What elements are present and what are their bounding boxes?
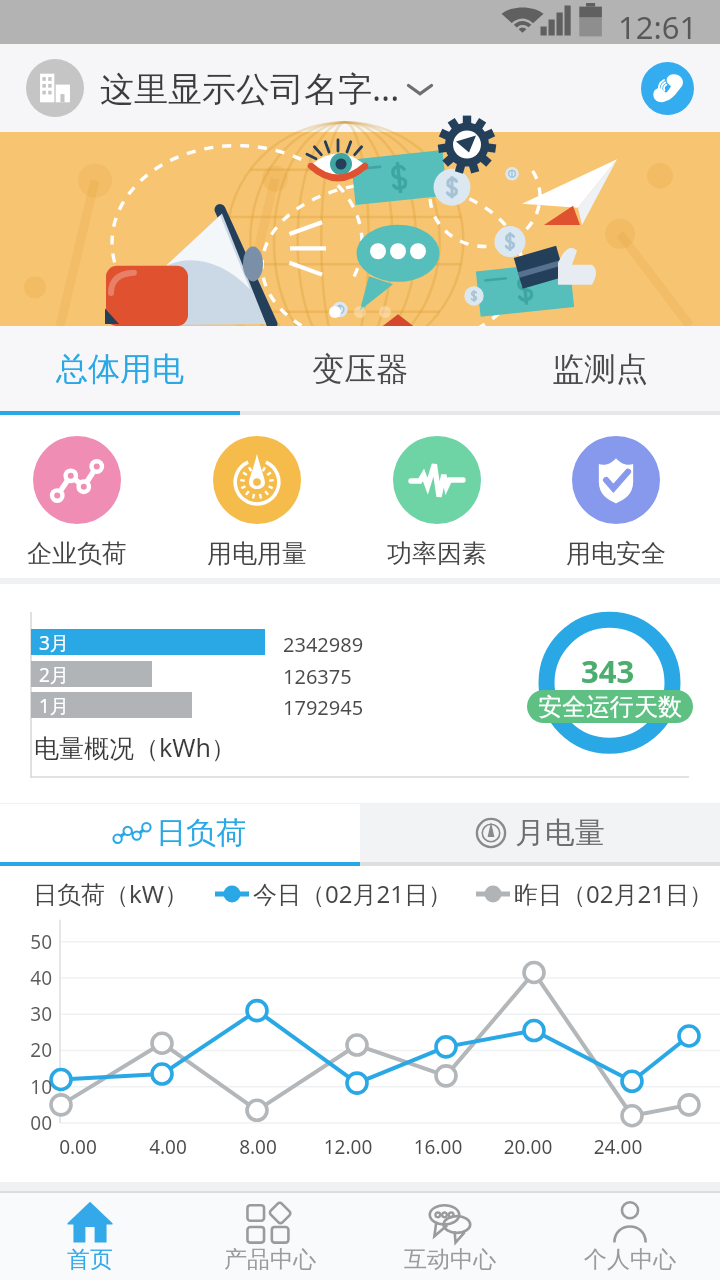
button[interactable]: 用电安全 [546, 436, 686, 569]
staticText: 30 [8, 1001, 52, 1027]
staticText: 10 [8, 1074, 52, 1100]
staticText: 343 [581, 650, 635, 692]
button[interactable]: 用电用量 [187, 436, 327, 569]
staticText: 月电量 [515, 814, 605, 852]
staticText: 2月 [39, 662, 69, 688]
button[interactable]: 总体用电 [0, 326, 240, 411]
staticText: 今日（02月21日） [253, 877, 452, 910]
staticText: 00 [8, 1110, 52, 1136]
staticText: 监测点 [552, 349, 648, 389]
button[interactable]: 变压器 [240, 326, 480, 411]
staticText: 这里显示公司名字... [100, 65, 400, 111]
staticText: 40 [8, 965, 52, 991]
button[interactable]: 首页 [0, 1193, 180, 1280]
staticText: 产品中心 [224, 1245, 316, 1274]
staticText: 企业负荷 [27, 538, 127, 569]
staticText: 12.00 [308, 1134, 388, 1160]
button[interactable]: 功率因素 [367, 436, 507, 569]
button[interactable]: 企业负荷 [7, 436, 147, 569]
staticText: 1月 [39, 693, 69, 719]
staticText: 126375 [283, 663, 352, 690]
staticText: 用电用量 [207, 538, 307, 569]
staticText: 安全运行天数 [538, 692, 682, 722]
staticText: 个人中心 [584, 1245, 676, 1274]
staticText: 日负荷 [156, 814, 246, 852]
staticText: 变压器 [312, 349, 408, 389]
staticText: 首页 [67, 1245, 113, 1274]
staticText: 8.00 [218, 1134, 298, 1160]
button[interactable]: Call [641, 62, 694, 115]
staticText: 4.00 [128, 1134, 208, 1160]
button[interactable]: 日负荷 [0, 804, 360, 862]
staticText: 互动中心 [404, 1245, 496, 1274]
staticText: 3月 [39, 630, 69, 656]
staticText: 日负荷（kW） [33, 877, 189, 910]
button[interactable]: 互动中心 [360, 1193, 540, 1280]
staticText: 总体用电 [56, 349, 184, 389]
staticText: 功率因素 [387, 538, 487, 569]
staticText: 1792945 [283, 694, 364, 721]
button[interactable] [0, 132, 720, 326]
staticText: 12:61 [618, 6, 698, 48]
staticText: 电量概况（kWh） [34, 730, 237, 764]
staticText: 2342989 [283, 631, 364, 658]
button[interactable]: 产品中心 [180, 1193, 360, 1280]
button[interactable]: 月电量 [360, 804, 720, 862]
staticText: 16.00 [398, 1134, 478, 1160]
staticText: 20 [8, 1037, 52, 1063]
button[interactable]: 这里显示公司名字... [26, 44, 436, 132]
staticText: 0.00 [38, 1134, 118, 1160]
staticText: 20.00 [488, 1134, 568, 1160]
staticText: 50 [8, 929, 52, 955]
staticText: 24.00 [578, 1134, 658, 1160]
button[interactable]: 个人中心 [540, 1193, 720, 1280]
staticText: 昨日（02月21日） [514, 877, 713, 910]
staticText: 用电安全 [566, 538, 666, 569]
button[interactable]: 监测点 [480, 326, 720, 411]
